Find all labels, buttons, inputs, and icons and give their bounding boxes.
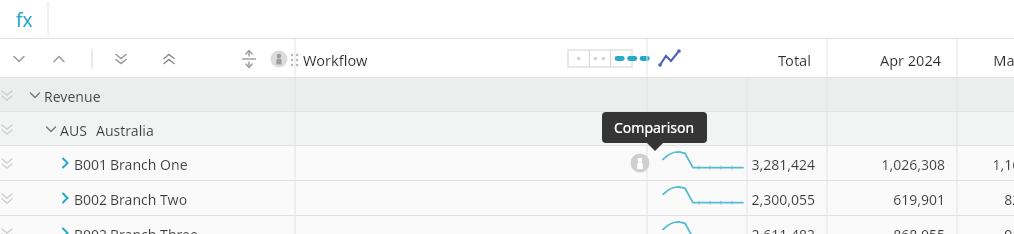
staticText: Revenue <box>44 87 101 106</box>
staticText: 821, <box>932 190 1014 209</box>
staticText: May 2 <box>934 50 1014 70</box>
staticText: Workflow <box>303 50 368 70</box>
button[interactable]: Collapse <box>26 86 44 104</box>
staticText: Australia <box>96 121 154 140</box>
staticText: 619,901 <box>845 190 945 209</box>
button[interactable]: Row density <box>568 50 632 67</box>
staticText: Branch One <box>110 155 188 174</box>
staticText: 1,160, <box>932 155 1014 174</box>
button[interactable]: Comparison <box>268 48 290 70</box>
button[interactable]: Previous <box>8 48 30 70</box>
staticText: Branch Two <box>110 190 188 209</box>
staticText: Apr 2024 <box>841 50 941 70</box>
staticText: Comparison <box>614 118 695 137</box>
button[interactable]: Formula <box>0 0 48 39</box>
button[interactable]: Next <box>48 48 70 70</box>
staticText: AUS <box>60 121 87 140</box>
staticText: 918, <box>932 225 1014 234</box>
staticText: Branch Three <box>110 225 198 234</box>
button[interactable]: Comparison <box>630 153 650 173</box>
button[interactable]: Expand <box>56 224 74 234</box>
button[interactable]: Collapse <box>42 120 60 138</box>
staticText: B001 <box>74 155 108 174</box>
button[interactable]: Expand <box>56 189 74 207</box>
button[interactable]: Chart <box>658 49 682 69</box>
staticText: 2,300,055 <box>715 190 815 209</box>
staticText: 2,611,483 <box>715 225 815 234</box>
staticText: fx <box>16 7 33 33</box>
staticText: B003 <box>74 225 108 234</box>
staticText: B002 <box>74 190 108 209</box>
button[interactable]: Expand <box>56 154 74 172</box>
button[interactable]: Collapse <box>0 78 1014 112</box>
staticText: Total <box>711 50 811 70</box>
button[interactable]: Collapse all <box>110 48 132 70</box>
button[interactable]: Expand <box>0 216 1014 234</box>
button[interactable]: Expand all <box>158 48 180 70</box>
staticText: 1,026,308 <box>845 155 945 174</box>
button[interactable]: Split rows <box>238 48 260 70</box>
button[interactable]: Expand <box>0 181 1014 216</box>
staticText: 3,281,424 <box>715 155 815 174</box>
staticText: 868,055 <box>845 225 945 234</box>
button[interactable]: Collapse <box>0 112 1014 146</box>
button[interactable]: Expand <box>0 146 1014 181</box>
